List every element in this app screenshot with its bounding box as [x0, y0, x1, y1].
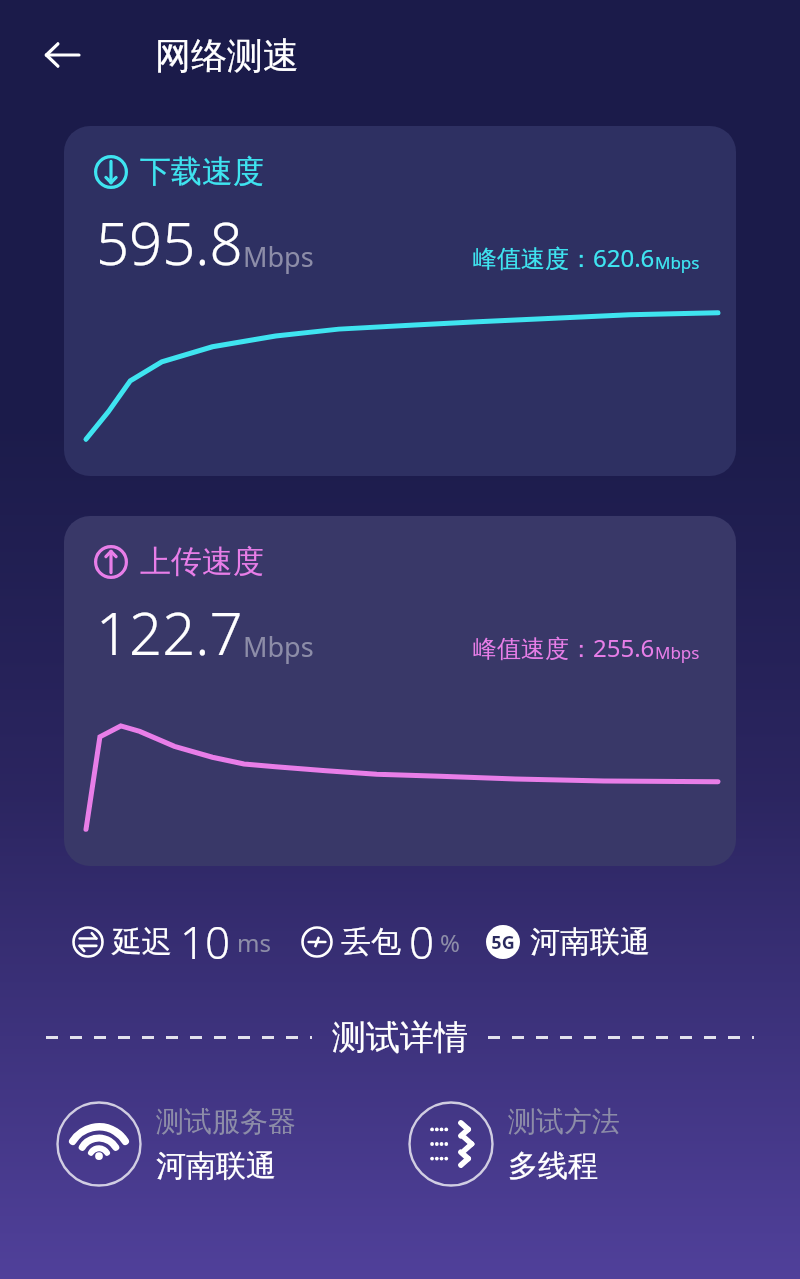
button[interactable]: 测试方法	[408, 1101, 800, 1187]
staticText: 测试详情	[332, 1016, 468, 1059]
staticText: 上传速度	[140, 542, 264, 581]
button[interactable]: 测试服务器	[56, 1101, 400, 1187]
button[interactable]: 5G	[486, 923, 650, 961]
staticText: Mbps	[655, 641, 700, 664]
staticText: 0	[409, 912, 435, 972]
staticText: 多线程	[508, 1147, 598, 1185]
staticText: Mbps	[655, 251, 700, 274]
button[interactable]: 上传速度	[64, 516, 736, 866]
staticText: 测试服务器	[156, 1104, 296, 1139]
button[interactable]: 丢包	[301, 912, 460, 972]
staticText: 延迟	[112, 923, 172, 961]
button[interactable]: 延迟	[72, 912, 271, 972]
staticText: 5G	[491, 930, 515, 955]
staticText: %	[440, 926, 460, 959]
staticText: 网络测速	[155, 33, 299, 78]
staticText: 595.8	[96, 203, 243, 282]
staticText: Mbps	[243, 628, 314, 665]
staticText: 丢包	[341, 923, 401, 961]
staticText: Mbps	[243, 238, 314, 275]
staticText: 峰值速度：255.6	[473, 631, 655, 664]
staticText: 河南联通	[530, 923, 650, 961]
staticText: 10	[180, 912, 231, 972]
staticText: 峰值速度：620.6	[473, 241, 655, 274]
button[interactable]: Back	[30, 23, 94, 87]
staticText: 测试方法	[508, 1104, 620, 1139]
staticText: 下载速度	[140, 152, 264, 191]
staticText: 河南联通	[156, 1147, 276, 1185]
staticText: 122.7	[96, 593, 243, 672]
button[interactable]: 下载速度	[64, 126, 736, 476]
staticText: ms	[237, 926, 271, 959]
